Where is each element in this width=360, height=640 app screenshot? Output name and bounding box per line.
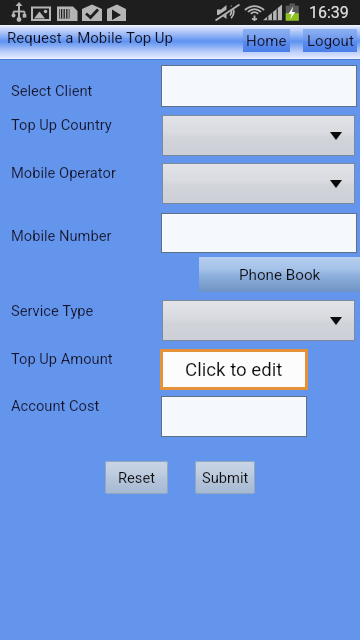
button[interactable]: Phone Book: [199, 257, 360, 292]
staticText: Submit: [202, 469, 249, 486]
button[interactable]: Dropdown: [162, 115, 355, 156]
button[interactable]: Dropdown: [162, 300, 355, 341]
staticText: Reset: [118, 469, 156, 486]
staticText: Request a Mobile Top Up: [7, 29, 174, 47]
staticText: Mobile Number: [11, 227, 112, 244]
staticText: Phone Book: [239, 266, 321, 284]
button[interactable]: Text input: [161, 396, 307, 437]
staticText: Top Up Country: [11, 116, 112, 133]
button[interactable]: Reset: [105, 461, 168, 494]
staticText: Click to edit: [185, 359, 283, 381]
staticText: Logout: [307, 32, 354, 50]
staticText: Home: [246, 32, 287, 50]
staticText: Mobile Operator: [11, 164, 116, 181]
button[interactable]: Text input: [161, 213, 357, 253]
button[interactable]: Text input: [161, 65, 357, 107]
staticText: Top Up Amount: [11, 350, 113, 367]
staticText: Account Cost: [11, 397, 100, 414]
staticText: Select Client: [11, 82, 93, 99]
button[interactable]: Submit: [195, 461, 255, 494]
button[interactable]: Click to edit: [160, 349, 308, 390]
button[interactable]: Home: [243, 29, 290, 52]
button[interactable]: Dropdown: [162, 163, 355, 204]
button[interactable]: Logout: [303, 29, 357, 52]
staticText: Service Type: [11, 302, 94, 319]
staticText: 16:39: [309, 3, 349, 22]
